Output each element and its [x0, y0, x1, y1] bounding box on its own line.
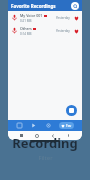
button[interactable]: Home: [35, 134, 39, 138]
button[interactable]: Back: [51, 134, 55, 138]
button[interactable]: Favorites: [61, 122, 72, 129]
button[interactable]: Settings: [45, 122, 52, 129]
button[interactable]: Microphone: [67, 134, 70, 137]
staticText: Others: [20, 26, 32, 31]
button[interactable]: Favorite: [73, 15, 79, 21]
button[interactable]: Favorite: [73, 28, 79, 34]
staticText: Filter: [38, 154, 53, 162]
staticText: Yesterday: [56, 16, 70, 20]
button[interactable]: Others: [8, 24, 82, 37]
staticText: Recording: [12, 134, 78, 152]
staticText: Yesterday: [56, 29, 70, 33]
button[interactable]: Play: [30, 122, 37, 129]
button[interactable]: Record: [66, 105, 77, 116]
button[interactable]: Search: [71, 2, 79, 10]
staticText: Favorite Recordings: [11, 3, 71, 9]
staticText: Fav: [66, 124, 72, 128]
staticText: My Voice 001: [20, 13, 43, 18]
button[interactable]: Recordings: [16, 122, 23, 129]
button[interactable]: My Voice 001: [8, 11, 82, 24]
staticText: 0:21 MB: [20, 19, 32, 23]
staticText: 0:14 MB: [20, 32, 32, 36]
